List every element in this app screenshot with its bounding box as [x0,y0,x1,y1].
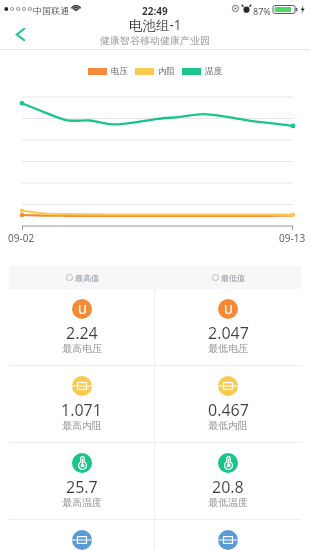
staticText: U [224,301,233,317]
staticText: 温度 [205,66,222,76]
staticText: 最高内阻 [62,419,102,432]
button[interactable]: 25.7 [9,443,154,519]
staticText: 最低值 [221,273,245,283]
staticText: 最低温度 [208,496,248,509]
staticText: 20.8 [212,476,244,498]
staticText: 最高电压 [62,342,102,355]
staticText: 25.7 [66,476,98,498]
staticText: 87% [253,5,271,17]
staticText: 09-02 [8,231,35,245]
staticText: 09-13 [279,231,306,245]
staticText: 0.467 [208,399,249,421]
staticText: 健康智谷移动健康产业园 [100,34,210,47]
staticText: 1.071 [61,399,102,421]
staticText: 中国联通 [33,5,69,16]
button[interactable]: U [155,289,301,365]
button[interactable]: 20.8 [155,443,301,519]
staticText: 内阻 [158,66,175,76]
staticText: U [78,301,87,317]
staticText: 最高值 [75,273,99,283]
button[interactable] [9,520,154,550]
button[interactable] [155,520,301,550]
staticText: 电池组-1 [129,16,182,34]
button[interactable]: U [9,289,154,365]
button[interactable]: 1.071 [9,366,154,442]
button[interactable]: 0.467 [155,366,301,442]
staticText: 最低电压 [208,342,248,355]
button[interactable]: Back [8,20,32,49]
staticText: 最低内阻 [208,419,248,432]
staticText: 2.24 [66,322,98,344]
staticText: 电压 [111,66,128,76]
staticText: 最高温度 [62,496,102,509]
staticText: 22:49 [142,4,168,18]
staticText: 2.047 [208,322,249,344]
